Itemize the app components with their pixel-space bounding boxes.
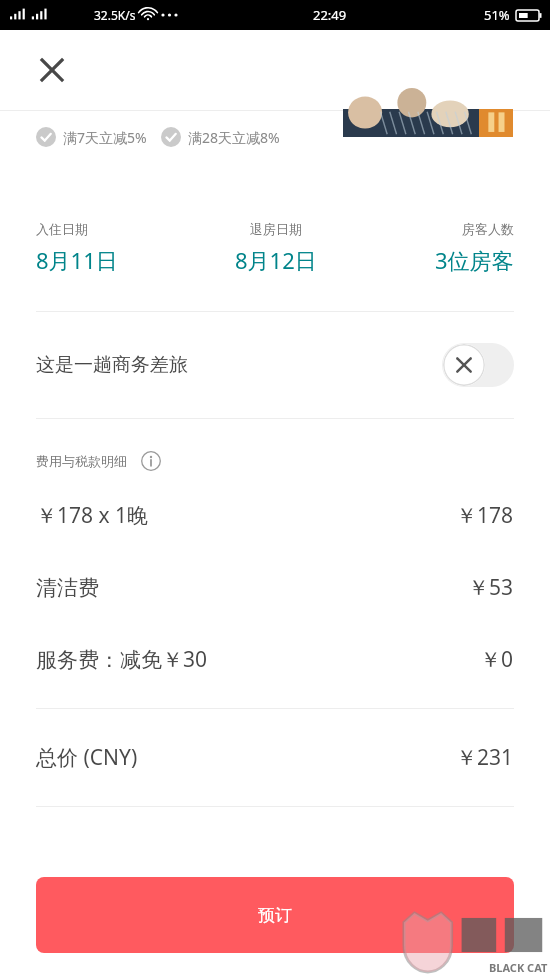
button[interactable]: 这是一趟商务差旅 (0, 312, 550, 418)
staticText: 入住日期 (36, 221, 88, 237)
button[interactable]: 服务费：减免￥30 (0, 645, 550, 674)
staticText: 服务费：减免￥30 (36, 645, 480, 674)
button[interactable]: ￥178 x 1晚 (0, 501, 550, 530)
staticText: 满28天立减8% (188, 128, 280, 147)
staticText: ￥231 (456, 743, 514, 772)
staticText: 22:49 (313, 6, 347, 24)
staticText: 51% (484, 6, 510, 24)
button[interactable]: Close (30, 48, 74, 92)
staticText: BLACK CAT (489, 960, 548, 975)
button[interactable]: Fee details info (137, 447, 165, 475)
staticText: 退房日期 (250, 221, 302, 237)
staticText: ￥53 (468, 573, 514, 602)
button[interactable]: 总价 (CNY) (0, 743, 550, 772)
staticText: 3位房客 (435, 245, 514, 275)
staticText: 房客人数 (462, 221, 514, 237)
staticText: 32.5K/s (94, 7, 136, 23)
staticText: 这是一趟商务差旅 (36, 353, 442, 377)
staticText: 满7天立减5% (63, 128, 147, 147)
button[interactable]: 满7天立减5% (36, 127, 147, 147)
staticText: 总价 (CNY) (36, 743, 456, 772)
staticText: 8月12日 (235, 245, 317, 275)
staticText: 预订 (258, 905, 292, 926)
staticText: ￥178 (456, 501, 514, 530)
staticText: 8月11日 (36, 245, 118, 275)
staticText: ￥0 (480, 645, 514, 674)
button[interactable]: 满28天立减8% (161, 127, 280, 147)
other: Business trip toggle, off (442, 343, 514, 387)
staticText: 费用与税款明细 (36, 453, 127, 469)
staticText: 清洁费 (36, 575, 468, 601)
button[interactable]: 清洁费 (0, 573, 550, 602)
button[interactable]: 预订 (36, 877, 514, 953)
staticText: ￥178 x 1晚 (36, 501, 456, 530)
